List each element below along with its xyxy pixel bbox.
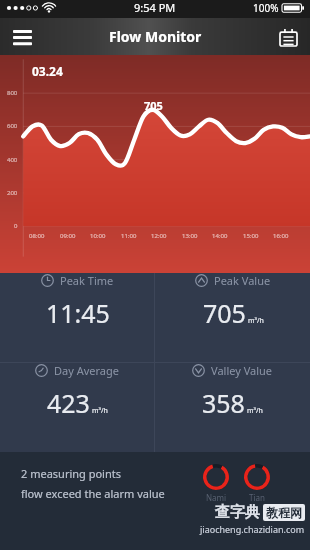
button[interactable]: Day Average	[0, 363, 154, 420]
staticText: 100%	[253, 1, 279, 15]
staticText: Day Average	[54, 363, 119, 378]
staticText: m³/h	[92, 406, 108, 416]
staticText: 13:00	[182, 232, 198, 240]
button[interactable]: Peak Value	[155, 273, 310, 330]
staticText: 10:00	[90, 232, 106, 240]
staticText: 705	[144, 98, 163, 113]
staticText: jiaocheng.chazidian.com	[200, 523, 305, 535]
staticText: flow exceed the alarm value	[21, 486, 165, 501]
staticText: 14:00	[212, 232, 228, 240]
staticText: 11:45	[46, 296, 110, 330]
staticText: 15:00	[243, 232, 259, 240]
button[interactable]: Valley Value	[155, 363, 310, 420]
staticText: 查字典	[215, 503, 260, 522]
staticText: 600	[7, 122, 18, 130]
staticText: 400	[7, 156, 18, 164]
button[interactable]: Calendar	[272, 21, 304, 53]
button[interactable]: Peak Time	[0, 273, 154, 330]
staticText: Nami	[206, 492, 227, 503]
staticText: m³/h	[248, 316, 264, 326]
staticText: 423	[47, 386, 90, 420]
staticText: 800	[7, 89, 18, 97]
staticText: 教程网	[266, 505, 302, 520]
staticText: 9:54 PM	[134, 0, 176, 15]
staticText: 08:00	[29, 232, 45, 240]
staticText: 11:00	[121, 232, 137, 240]
staticText: 200	[7, 189, 18, 197]
staticText: 03.24	[32, 63, 63, 79]
staticText: 358	[202, 386, 245, 420]
staticText: 16:00	[273, 232, 289, 240]
staticText: 12:00	[151, 232, 167, 240]
staticText: Peak Value	[214, 273, 271, 288]
staticText: m³/h	[247, 406, 263, 416]
staticText: 0	[14, 222, 18, 230]
staticText: Valley Value	[211, 363, 273, 378]
staticText: 2 measuring points	[21, 466, 121, 481]
staticText: Tian	[249, 492, 265, 503]
staticText: Peak Time	[60, 273, 114, 288]
button[interactable]: Menu	[6, 21, 38, 53]
staticText: 09:00	[60, 232, 76, 240]
staticText: 705	[203, 296, 246, 330]
staticText: Flow Monitor	[109, 27, 202, 46]
